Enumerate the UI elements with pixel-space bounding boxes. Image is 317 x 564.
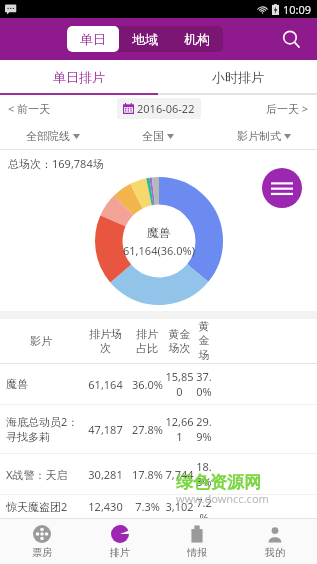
staticText: 影片 <box>30 334 52 348</box>
staticText: 7,744 <box>165 467 194 482</box>
button[interactable]: 票房 <box>7 519 77 564</box>
staticText: 61,164(36.0%) <box>123 243 195 258</box>
button[interactable]: 小时排片 <box>158 60 317 93</box>
button[interactable]: 我的 <box>240 519 310 564</box>
staticText: 61,164 <box>88 377 123 392</box>
staticText: 影片制式 <box>237 129 281 143</box>
staticText: 全部院线 <box>26 129 70 143</box>
button[interactable]: 机构 <box>171 26 223 52</box>
staticText: < 前一天 <box>8 101 51 116</box>
staticText: 2016-06-22 <box>137 101 195 116</box>
staticText: 47,187 <box>88 422 123 437</box>
button[interactable]: 全国 <box>105 122 211 149</box>
staticText: 情报 <box>187 546 207 559</box>
staticText: 10:09 <box>283 2 312 17</box>
staticText: 3,102 <box>165 499 194 514</box>
staticText: 29.9% <box>194 414 214 444</box>
staticText: 排片 <box>110 546 130 559</box>
staticText: 排片占比 <box>131 327 163 355</box>
staticText: X战警：天启 <box>6 467 68 482</box>
staticText: 37.0% <box>194 369 214 399</box>
staticText: 海底总动员2：寻找多莉 <box>6 414 82 444</box>
staticText: 15,850 <box>165 369 194 399</box>
staticText: 魔兽 <box>6 377 28 391</box>
staticText: 黄金场次 <box>167 327 192 355</box>
button[interactable]: Menu <box>262 168 302 208</box>
staticText: 魔兽 <box>147 225 171 240</box>
staticText: 后一天 > <box>266 101 309 116</box>
staticText: 7.3% <box>135 499 160 514</box>
button[interactable]: < 前一天 <box>0 95 78 122</box>
button[interactable]: 单日 <box>67 26 119 52</box>
staticText: 36.0% <box>132 377 163 392</box>
staticText: 30,281 <box>88 467 123 482</box>
button[interactable]: 魔兽 <box>0 364 317 404</box>
staticText: 绿色资源网 <box>176 472 261 493</box>
button[interactable]: Search <box>275 23 307 55</box>
staticText: 排片场次 <box>84 327 127 355</box>
staticText: 全国 <box>142 129 164 143</box>
staticText: 单日排片 <box>53 69 105 85</box>
button[interactable]: 全部院线 <box>0 122 105 149</box>
staticText: 机构 <box>184 31 210 47</box>
staticText: 总场次：169,784场 <box>8 156 104 171</box>
staticText: www.downcc.com <box>176 491 269 506</box>
button[interactable]: 2016-06-22 <box>117 98 201 119</box>
button[interactable]: X战警：天启 <box>0 454 317 494</box>
staticText: 票房 <box>32 546 52 559</box>
button[interactable]: 地域 <box>119 26 171 52</box>
staticText: 地域 <box>132 31 158 47</box>
button[interactable]: 惊天魔盗团2 <box>0 495 317 518</box>
staticText: 7.2% <box>194 495 214 518</box>
staticText: 12,430 <box>88 499 123 514</box>
staticText: 小时排片 <box>212 69 264 85</box>
button[interactable]: 情报 <box>162 519 232 564</box>
button[interactable]: 影片制式 <box>211 122 317 149</box>
staticText: 17.8% <box>132 467 163 482</box>
button[interactable]: 单日排片 <box>0 60 158 93</box>
staticText: 27.8% <box>132 422 163 437</box>
staticText: 单日 <box>80 31 106 47</box>
staticText: 18.3% <box>194 459 214 489</box>
staticText: 我的 <box>265 546 285 559</box>
button[interactable]: 后一天 > <box>239 95 317 122</box>
staticText: 12,661 <box>165 414 194 444</box>
staticText: 黄金场占比 <box>196 319 212 363</box>
button[interactable]: 排片 <box>85 519 155 564</box>
staticText: 惊天魔盗团2 <box>6 499 68 514</box>
button[interactable]: 海底总动员2：寻找多莉 <box>0 405 317 453</box>
